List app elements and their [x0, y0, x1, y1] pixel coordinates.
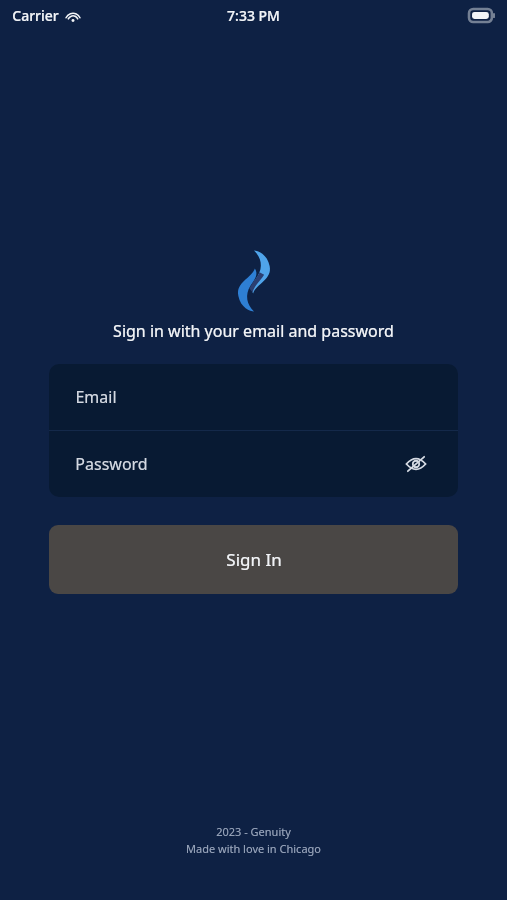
- staticText: 7:33 PM: [227, 6, 280, 25]
- staticText: Sign in with your email and password: [113, 320, 394, 342]
- button[interactable]: Password: [49, 431, 458, 497]
- staticText: Email: [75, 386, 117, 408]
- button[interactable]: Sign In: [49, 525, 458, 594]
- button[interactable]: Show password: [400, 448, 432, 480]
- staticText: Password: [75, 453, 148, 475]
- staticText: Sign In: [226, 548, 282, 571]
- button[interactable]: Email: [49, 364, 458, 430]
- staticText: Made with love in Chicago: [186, 841, 321, 856]
- staticText: 2023 - Genuity: [216, 824, 291, 839]
- staticText: Carrier: [12, 6, 59, 25]
